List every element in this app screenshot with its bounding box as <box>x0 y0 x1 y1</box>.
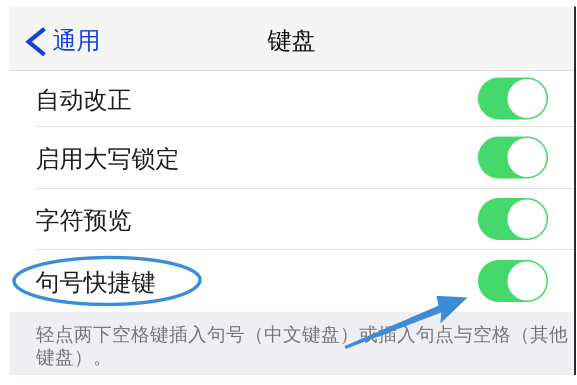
button[interactable]: 自动改正 <box>9 71 478 126</box>
staticText: 通用 <box>52 26 100 55</box>
button[interactable]: 自动改正 <box>478 71 573 126</box>
staticText: 启用大写锁定 <box>35 144 179 174</box>
button[interactable]: 通用 <box>9 6 112 71</box>
button[interactable]: 字符预览 <box>478 189 573 249</box>
button[interactable]: 句号快捷键 <box>9 250 478 312</box>
staticText: 自动改正 <box>35 85 131 115</box>
button[interactable]: 启用大写锁定 <box>9 127 478 188</box>
staticText: 轻点两下空格键插入句号（中文键盘）或插入句点与空格（其他键盘）。 <box>36 323 568 369</box>
button[interactable]: 字符预览 <box>9 189 478 249</box>
staticText: 字符预览 <box>35 206 131 235</box>
staticText: 键盘 <box>267 26 315 55</box>
staticText: 句号快捷键 <box>35 268 155 297</box>
button[interactable]: 句号快捷键 <box>478 250 573 312</box>
button[interactable]: 启用大写锁定 <box>478 127 573 188</box>
